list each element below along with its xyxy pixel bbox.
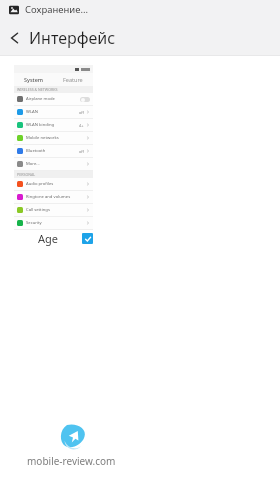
button[interactable]: Airplane mode xyxy=(14,93,93,105)
staticText: Airplane mode xyxy=(26,96,55,102)
button[interactable]: WLAN xyxy=(14,106,93,118)
staticText: PERSONAL xyxy=(17,172,36,177)
staticText: Feature xyxy=(63,76,83,83)
button[interactable]: Call settings xyxy=(14,204,93,216)
staticText: Bluetooth xyxy=(26,148,46,154)
staticText: WIRELESS & NETWORKS xyxy=(17,87,58,92)
staticText: off xyxy=(79,110,84,115)
other: Age selected xyxy=(82,233,93,244)
staticText: Security xyxy=(26,220,42,226)
staticText: WLAN binding xyxy=(26,122,55,128)
button[interactable]: System xyxy=(14,65,93,230)
button[interactable]: Mobile networks xyxy=(14,132,93,144)
button[interactable]: Bluetooth xyxy=(14,145,93,157)
staticText: Ringtone and volumes xyxy=(26,194,71,200)
button[interactable]: Security xyxy=(14,217,93,229)
staticText: System xyxy=(24,76,44,83)
button[interactable]: Back xyxy=(0,19,126,56)
button[interactable]: More... xyxy=(14,158,93,170)
button[interactable]: Age xyxy=(14,230,93,246)
other: Download image xyxy=(9,5,19,15)
staticText: 4+ xyxy=(79,123,84,128)
button[interactable]: WLAN binding xyxy=(14,119,93,131)
staticText: Audio profiles xyxy=(26,181,54,187)
staticText: Call settings xyxy=(26,207,50,213)
staticText: Mobile networks xyxy=(26,135,59,141)
staticText: Интерфейс xyxy=(29,27,116,49)
staticText: Age xyxy=(38,231,58,246)
staticText: Сохранение... xyxy=(25,3,89,16)
button[interactable]: Audio profiles xyxy=(14,178,93,190)
button[interactable]: Ringtone and volumes xyxy=(14,191,93,203)
staticText: More... xyxy=(26,161,40,167)
staticText: mobile-review.com xyxy=(27,454,116,468)
staticText: WLAN xyxy=(26,109,38,115)
other: Back xyxy=(8,31,22,45)
staticText: off xyxy=(79,149,84,154)
